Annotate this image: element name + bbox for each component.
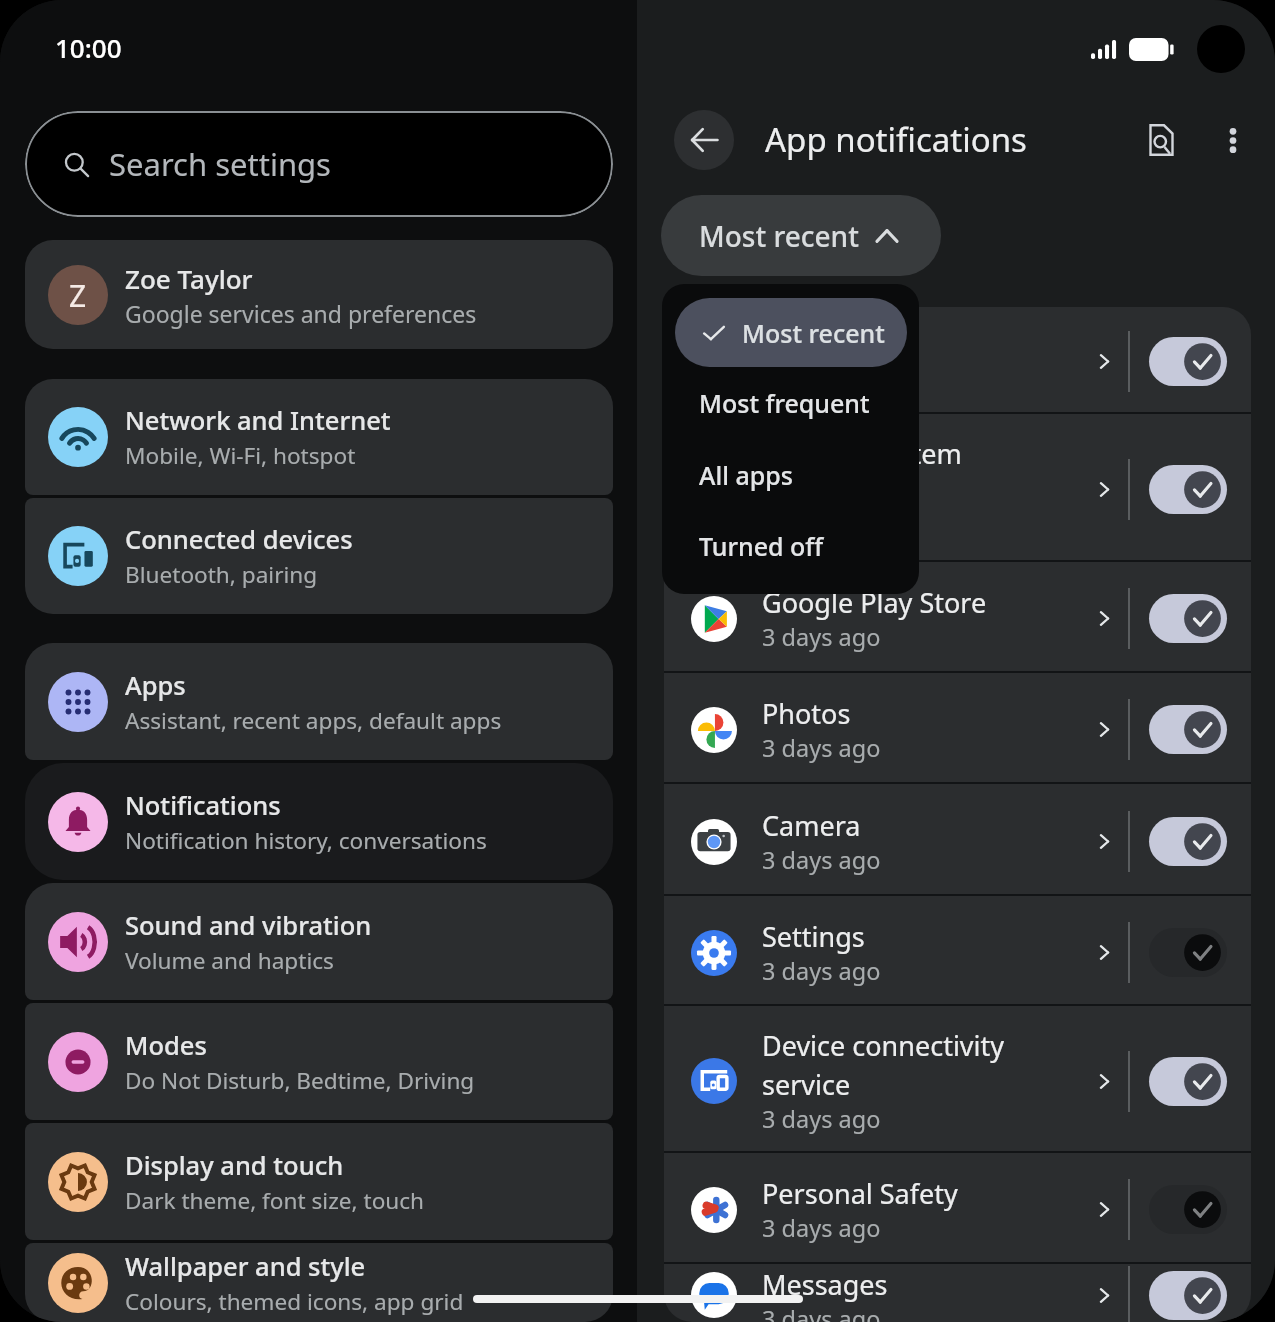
button[interactable]: Android System Intelligence	[664, 414, 1251, 560]
button[interactable]: Hidden	[664, 307, 1251, 412]
staticText: Most frequent	[699, 386, 870, 420]
staticText: Do Not Disturb, Bedtime, Driving	[125, 1065, 475, 1096]
staticText: Google Play Store	[762, 584, 987, 621]
staticText: Network and Internet	[125, 403, 391, 438]
staticText: Bluetooth, pairing	[125, 559, 318, 590]
staticText: All apps	[699, 458, 793, 492]
staticText: 3 days ago	[762, 844, 881, 876]
staticText: Volume and haptics	[125, 945, 334, 976]
button[interactable]: Search settings	[25, 111, 613, 217]
staticText: Hidden	[762, 327, 855, 364]
staticText: Zoe Taylor	[125, 261, 253, 296]
staticText: 10:00	[55, 30, 122, 65]
staticText: 3 days ago	[762, 732, 881, 764]
button[interactable]: Display and touch	[48, 1123, 613, 1240]
staticText: 3 days ago	[762, 1212, 881, 1244]
staticText: Sound and vibration	[125, 908, 372, 943]
staticText: Apps	[125, 668, 186, 703]
staticText: Messages	[762, 1266, 888, 1303]
staticText: Google services and preferences	[125, 298, 477, 329]
button[interactable]: Messages	[664, 1264, 1251, 1322]
button[interactable]: Turned off	[662, 510, 919, 581]
staticText: Notifications	[125, 788, 281, 823]
staticText: Most recent	[742, 316, 885, 350]
staticText: Mobile, Wi-Fi, hotspot	[125, 440, 356, 471]
button[interactable]: Camera	[664, 784, 1251, 894]
button[interactable]: Modes	[48, 1003, 613, 1120]
staticText: 3 days ago	[762, 621, 881, 653]
button[interactable]: Connected devices	[48, 498, 613, 614]
staticText: 3 days ago	[762, 511, 881, 543]
staticText: Assistant, recent apps, default apps	[125, 705, 502, 736]
staticText: Android System Intelligence	[762, 435, 1087, 511]
staticText: Display and touch	[125, 1148, 344, 1183]
staticText: Notification history, conversations	[125, 825, 487, 856]
staticText: Colours, themed icons, app grid	[125, 1286, 464, 1317]
staticText: 3 days ago	[762, 955, 881, 987]
staticText: Z	[69, 275, 87, 316]
staticText: Camera	[762, 807, 861, 844]
button[interactable]: Google Play Store	[664, 562, 1251, 671]
staticText: 3 days ago	[762, 1103, 881, 1135]
button[interactable]: Notifications	[48, 763, 613, 880]
button[interactable]: All apps	[662, 439, 919, 510]
staticText: Turned off	[699, 529, 824, 563]
staticText: 3 days ago	[762, 364, 881, 396]
button[interactable]: Sound and vibration	[48, 883, 613, 1000]
button[interactable]: Wallpaper and style	[48, 1243, 613, 1322]
button[interactable]: Back	[674, 110, 734, 170]
button[interactable]: Apps	[48, 643, 613, 760]
staticText: Dark theme, font size, touch	[125, 1185, 425, 1216]
button[interactable]: Most recent	[675, 298, 907, 367]
button[interactable]: Network and Internet	[48, 379, 613, 495]
button[interactable]: Z	[25, 240, 613, 349]
button[interactable]: Device connectivity service	[664, 1006, 1251, 1151]
staticText: Wallpaper and style	[125, 1249, 366, 1284]
staticText: App notifications	[765, 117, 1027, 162]
staticText: Most recent	[699, 217, 859, 255]
staticText: Settings	[762, 918, 865, 955]
button[interactable]: Settings	[664, 896, 1251, 1004]
staticText: Photos	[762, 695, 851, 732]
staticText: Personal Safety	[762, 1175, 958, 1212]
button[interactable]: Most recent	[661, 195, 941, 276]
button[interactable]: More options	[1203, 110, 1263, 170]
staticText: Connected devices	[125, 522, 353, 557]
staticText: Search settings	[109, 143, 331, 185]
button[interactable]: Search in page	[1131, 110, 1191, 170]
button[interactable]: Most frequent	[662, 367, 919, 439]
staticText: 3 days ago	[762, 1303, 881, 1322]
button[interactable]: Photos	[664, 673, 1251, 782]
staticText: Device connectivity service	[762, 1027, 1087, 1103]
staticText: Modes	[125, 1028, 207, 1063]
button[interactable]: Personal Safety	[664, 1153, 1251, 1262]
